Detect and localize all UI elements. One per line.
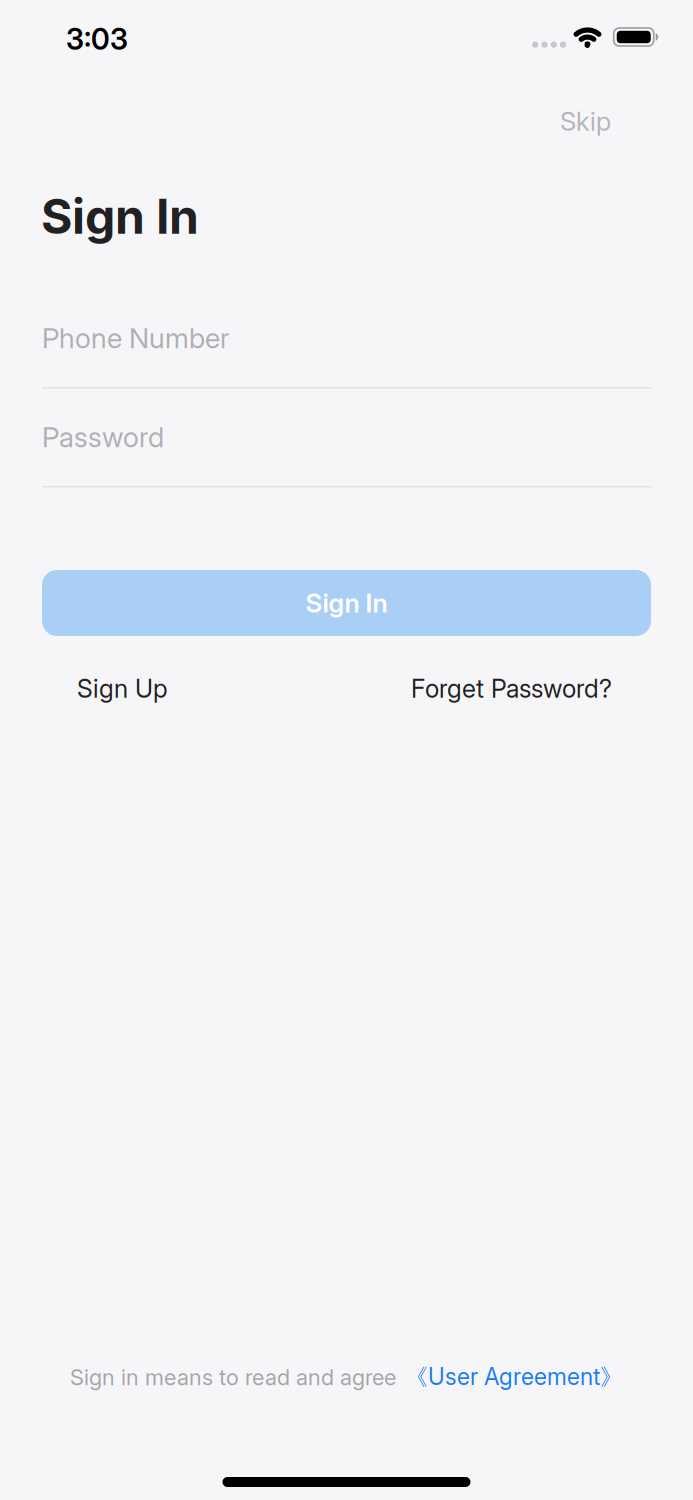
staticText: 3:03: [66, 22, 128, 56]
staticText: Sign Up: [77, 674, 168, 703]
staticText: 《User Agreement》: [405, 1363, 623, 1391]
button[interactable]: Sign In: [42, 570, 651, 636]
staticText: Sign In: [41, 188, 199, 245]
button[interactable]: Forget Password?: [411, 674, 612, 703]
staticText: Sign In: [305, 587, 387, 619]
staticText: Skip: [560, 106, 611, 137]
button[interactable]: Sign Up: [77, 674, 168, 703]
button[interactable]: Skip: [560, 106, 611, 137]
button[interactable]: 《User Agreement》: [405, 1363, 623, 1391]
staticText: Phone Number: [42, 321, 229, 355]
staticText: Sign in means to read and agree: [70, 1364, 396, 1390]
staticText: Password: [42, 420, 164, 454]
staticText: Forget Password?: [411, 674, 612, 703]
